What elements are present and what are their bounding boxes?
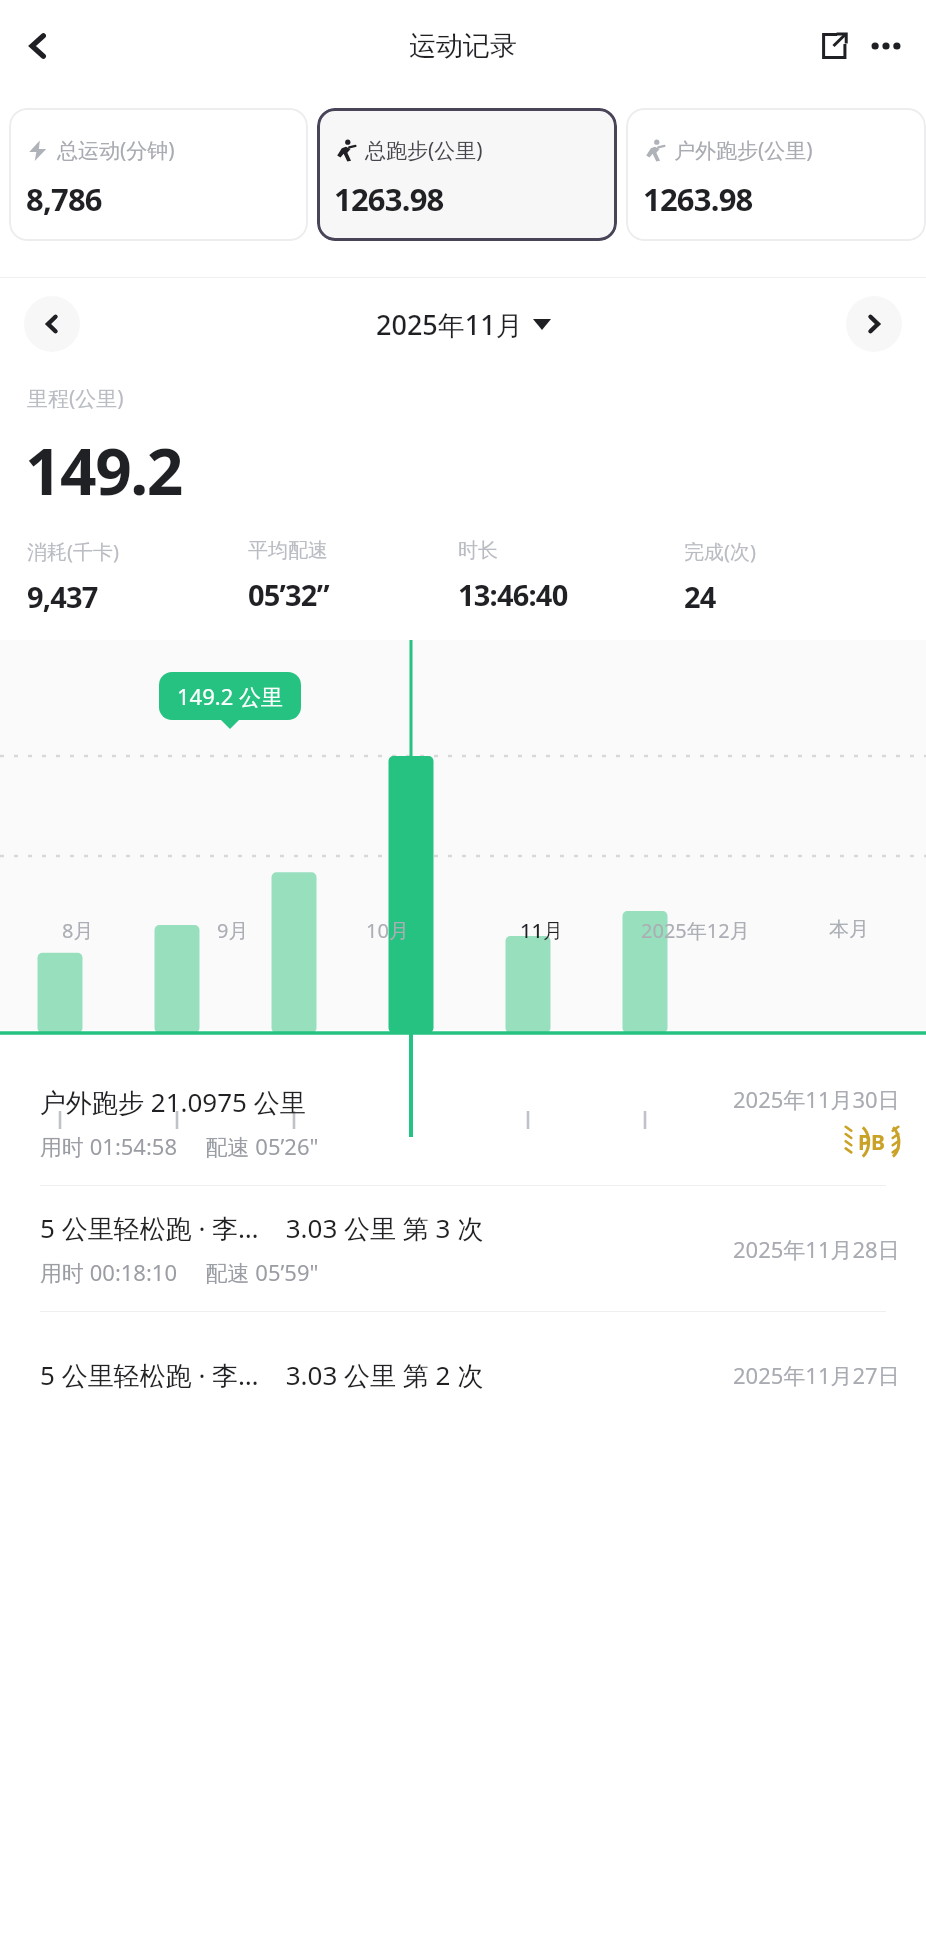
button[interactable]: Back <box>10 18 66 74</box>
button[interactable]: Next month <box>846 296 902 352</box>
staticText: 10月 <box>366 917 409 944</box>
button[interactable]: 户外跑步 21.0975 公里 <box>0 1060 926 1185</box>
staticText: 2025年12月 <box>641 917 750 944</box>
staticText: 完成(次) <box>684 538 756 565</box>
staticText: 5 公里轻松跑 · 李… 3.03 公里 第 2 次 <box>40 1357 484 1393</box>
staticText: 户外跑步 21.0975 公里 <box>40 1084 306 1120</box>
staticText: 本月 <box>829 917 869 942</box>
staticText: 8月 <box>62 917 94 944</box>
staticText: 运动记录 <box>409 29 517 63</box>
button[interactable]: Share <box>808 20 860 72</box>
staticText: 1263.98 <box>643 178 753 220</box>
button[interactable]: 5 公里轻松跑 · 李… 3.03 公里 第 3 次 <box>0 1186 926 1311</box>
button[interactable]: 总运动(分钟) <box>9 108 308 241</box>
staticText: 13:46:40 <box>458 575 568 614</box>
staticText: 总跑步(公里) <box>365 136 483 165</box>
staticText: 2025年11月 <box>376 306 523 343</box>
button[interactable]: More options <box>860 20 912 72</box>
staticText: 用时 01:54:58 配速 05’26" <box>40 1131 319 1161</box>
staticText: 时长 <box>458 538 498 563</box>
staticText: 149.2 公里 <box>177 681 283 711</box>
staticText: 9月 <box>217 917 249 944</box>
staticText: 总运动(分钟) <box>57 136 175 165</box>
staticText: 11月 <box>520 917 563 944</box>
staticText: 2025年11月27日 <box>733 1360 900 1390</box>
staticText: 用时 00:18:10 配速 05’59" <box>40 1257 319 1287</box>
staticText: 1263.98 <box>334 178 444 220</box>
staticText: 05’32” <box>248 575 329 614</box>
staticText: 平均配速 <box>248 538 328 563</box>
staticText: 9,437 <box>27 577 98 616</box>
button[interactable]: 5 公里轻松跑 · 李… 3.03 公里 第 2 次 <box>0 1312 926 1437</box>
staticText: 里程(公里) <box>27 384 124 413</box>
button[interactable]: Previous month <box>24 296 80 352</box>
staticText: 8,786 <box>26 178 102 220</box>
button[interactable]: 总跑步(公里) <box>317 108 617 241</box>
button[interactable]: 2025年11月 <box>376 306 551 343</box>
staticText: PB <box>858 1128 886 1157</box>
button[interactable]: 户外跑步(公里) <box>626 108 926 241</box>
staticText: 149.2 <box>25 427 182 514</box>
staticText: 24 <box>684 577 716 616</box>
staticText: 5 公里轻松跑 · 李… 3.03 公里 第 3 次 <box>40 1210 484 1246</box>
staticText: 2025年11月28日 <box>733 1234 900 1264</box>
staticText: 户外跑步(公里) <box>674 136 813 165</box>
staticText: 消耗(千卡) <box>27 538 119 565</box>
staticText: 2025年11月30日 <box>733 1084 900 1114</box>
